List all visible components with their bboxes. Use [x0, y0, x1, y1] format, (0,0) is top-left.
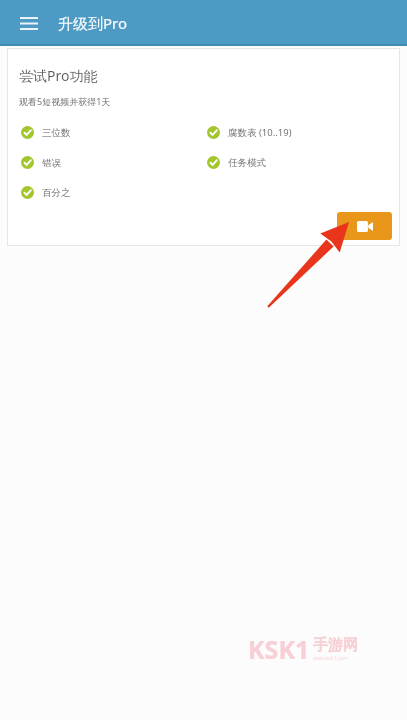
staticText: 任务模式 — [228, 157, 266, 169]
staticText: 尝试Pro功能 — [19, 66, 98, 85]
staticText: 观看5短视频并获得1天 — [19, 95, 111, 107]
staticText: 错误 — [42, 157, 61, 169]
button[interactable]: Watch video — [337, 212, 392, 240]
staticText: www.ksk1.com — [313, 655, 348, 662]
staticText: 三位数 — [42, 127, 71, 139]
staticText: KSK1 — [248, 632, 310, 666]
staticText: 腐数表 (10..19) — [228, 126, 292, 139]
staticText: 百分之 — [42, 187, 71, 199]
staticText: 升级到Pro — [58, 13, 128, 33]
button[interactable]: Open navigation menu — [12, 6, 46, 40]
staticText: 手游网 — [313, 636, 358, 655]
